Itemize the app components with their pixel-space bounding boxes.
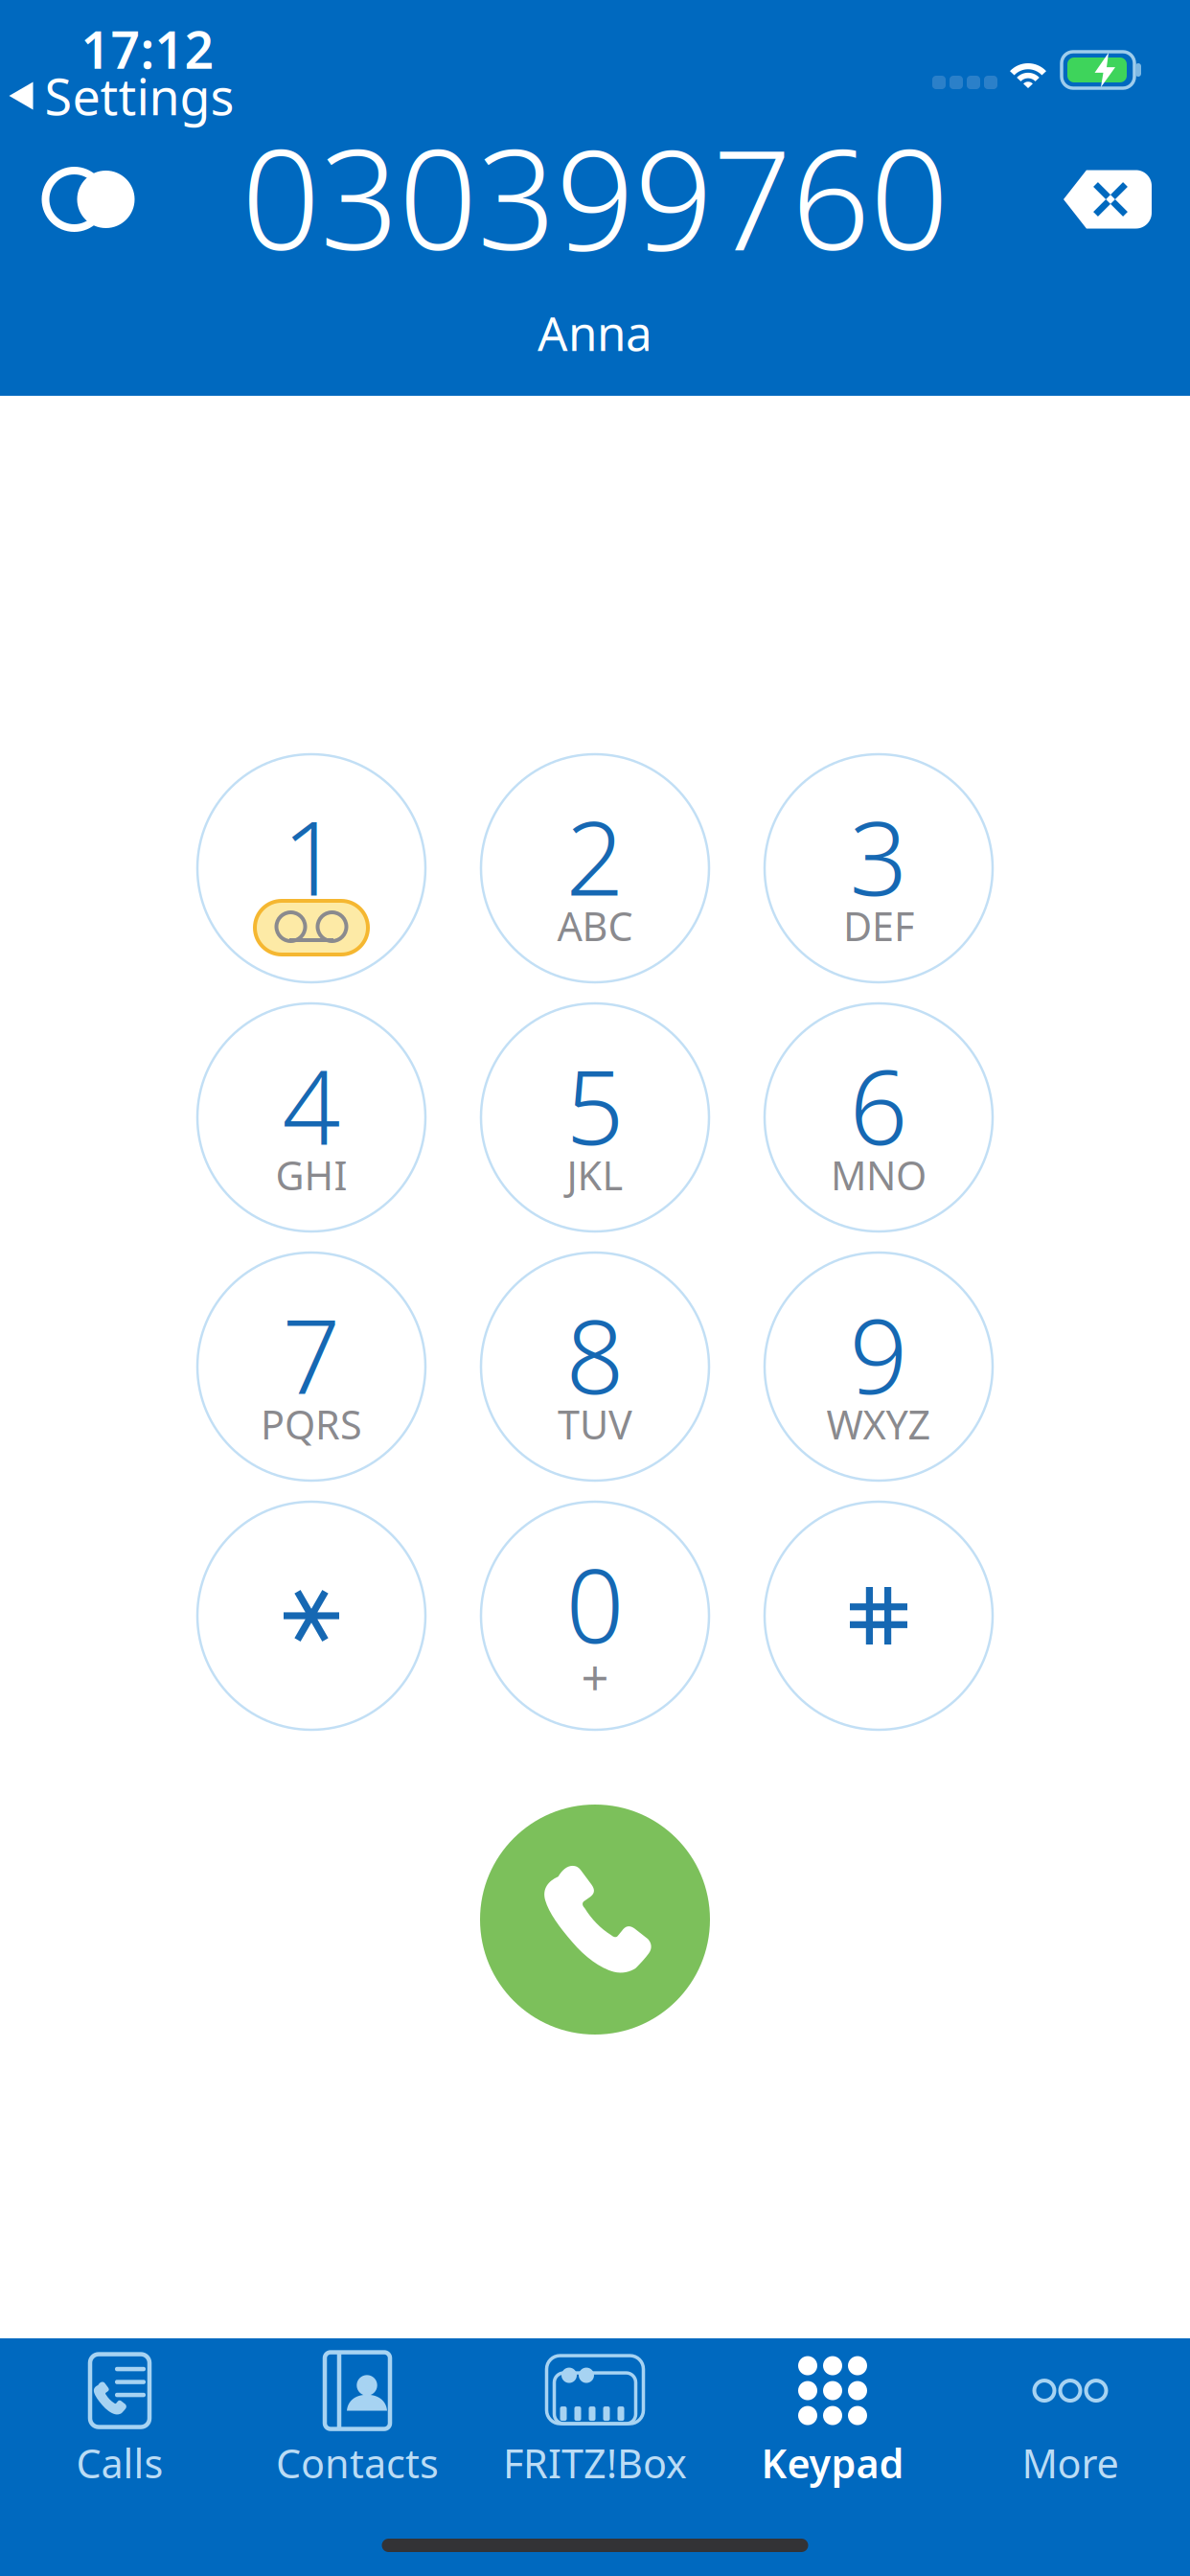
- button[interactable]: 4: [197, 1003, 425, 1231]
- staticText: DEF: [843, 899, 914, 952]
- staticText: 17:12: [81, 15, 214, 83]
- staticText: 9: [849, 1286, 908, 1422]
- staticText: 7: [282, 1286, 341, 1422]
- button[interactable]: Calls: [1, 2341, 239, 2495]
- staticText: 3: [849, 788, 908, 924]
- staticText: +: [581, 1645, 609, 1709]
- button[interactable]: 9: [765, 1253, 993, 1481]
- button[interactable]: 2: [481, 754, 709, 982]
- button[interactable]: More: [951, 2341, 1189, 2495]
- staticText: MNO: [831, 1149, 927, 1201]
- button[interactable]: FRITZ!Box: [476, 2341, 714, 2495]
- staticText: 6: [849, 1037, 908, 1173]
- staticText: Calls: [76, 2437, 163, 2489]
- button[interactable]: Select line: [18, 147, 162, 252]
- button[interactable]: [765, 1502, 993, 1730]
- staticText: 030399760: [241, 105, 949, 288]
- staticText: More: [1022, 2437, 1119, 2489]
- staticText: JKL: [567, 1149, 623, 1201]
- button[interactable]: 5: [481, 1003, 709, 1231]
- button[interactable]: Call: [480, 1805, 710, 2035]
- staticText: 1: [282, 788, 341, 924]
- button[interactable]: 6: [765, 1003, 993, 1231]
- staticText: PQRS: [261, 1398, 362, 1450]
- button[interactable]: 0: [481, 1502, 709, 1730]
- button[interactable]: 8: [481, 1253, 709, 1481]
- staticText: 0: [566, 1535, 624, 1671]
- button[interactable]: 3: [765, 754, 993, 982]
- staticText: WXYZ: [826, 1398, 931, 1450]
- staticText: GHI: [275, 1149, 347, 1201]
- staticText: 5: [566, 1037, 624, 1173]
- staticText: TUV: [558, 1398, 632, 1450]
- button[interactable]: Delete: [1042, 149, 1173, 249]
- staticText: FRITZ!Box: [503, 2437, 687, 2489]
- button[interactable]: 1: [197, 754, 425, 982]
- staticText: 4: [282, 1037, 341, 1173]
- button[interactable]: 7: [197, 1253, 425, 1481]
- button[interactable]: Keypad: [714, 2341, 951, 2495]
- button[interactable]: [197, 1502, 425, 1730]
- staticText: Keypad: [761, 2437, 904, 2489]
- staticText: 8: [566, 1286, 624, 1422]
- staticText: Contacts: [276, 2437, 439, 2489]
- staticText: ABC: [557, 899, 633, 952]
- staticText: Settings: [45, 63, 234, 129]
- button[interactable]: Contacts: [239, 2341, 476, 2495]
- staticText: Anna: [538, 301, 652, 364]
- staticText: 2: [566, 788, 624, 924]
